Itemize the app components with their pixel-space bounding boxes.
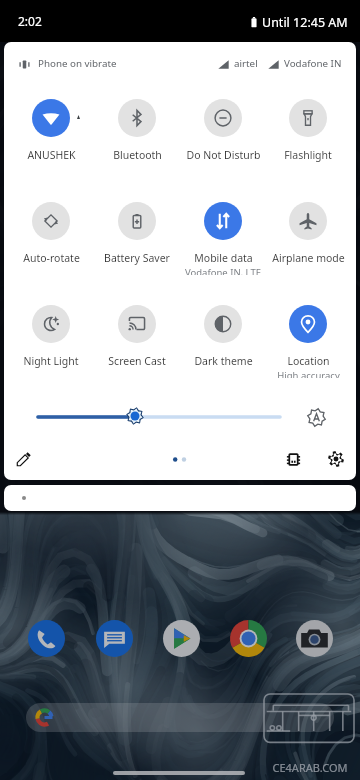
button[interactable]: Search xyxy=(26,703,334,732)
staticText: Dark theme xyxy=(194,354,253,368)
button[interactable]: Brightness xyxy=(126,407,144,425)
button[interactable]: Airplane mode xyxy=(265,198,351,274)
button[interactable]: Battery Saver xyxy=(94,198,180,274)
staticText: Auto-rotate xyxy=(23,251,80,265)
button[interactable]: Messages xyxy=(94,618,134,658)
staticText: Battery Saver xyxy=(104,251,170,265)
staticText: Vodafone IN, LTE xyxy=(185,266,261,275)
staticText: High accuracy xyxy=(277,369,340,378)
button[interactable]: Phone xyxy=(26,618,66,658)
staticText: Do Not Disturb xyxy=(186,148,261,162)
staticText: CE4ARAB.COM xyxy=(262,760,358,775)
staticText: ANUSHEK xyxy=(27,148,76,162)
button[interactable]: Chrome xyxy=(228,618,268,658)
button[interactable]: Play Store xyxy=(161,618,201,658)
staticText: Phone on vibrate xyxy=(38,57,117,70)
button[interactable]: Edit xyxy=(12,447,36,471)
button[interactable]: Flashlight xyxy=(265,95,351,171)
button[interactable]: Screen Cast xyxy=(94,301,180,377)
button[interactable]: Auto-rotate xyxy=(8,198,94,274)
staticText: Screen Cast xyxy=(108,354,166,368)
button[interactable]: ANUSHEK xyxy=(8,95,94,171)
button[interactable]: Location xyxy=(265,301,351,377)
staticText: Flashlight xyxy=(284,148,332,162)
staticText: airtel xyxy=(234,57,258,70)
button[interactable]: Camera xyxy=(294,618,334,658)
button[interactable]: Auto brightness xyxy=(305,406,327,428)
staticText: Night Light xyxy=(23,354,79,368)
staticText: Until 12:45 AM xyxy=(262,14,348,31)
staticText: Airplane mode xyxy=(272,251,345,265)
button[interactable]: Dark theme xyxy=(180,301,266,377)
button[interactable]: Settings xyxy=(324,447,348,471)
button[interactable]: Mobile data xyxy=(180,198,266,274)
staticText: 2:02 xyxy=(18,13,42,29)
staticText: Vodafone IN xyxy=(284,57,342,70)
staticText: Location xyxy=(287,354,330,368)
button[interactable]: Do Not Disturb xyxy=(180,95,266,171)
button[interactable]: Night Light xyxy=(8,301,94,377)
button[interactable]: Bluetooth xyxy=(94,95,180,171)
staticText: Mobile data xyxy=(194,251,253,265)
staticText: Bluetooth xyxy=(113,148,162,162)
button[interactable]: Device info xyxy=(281,447,305,471)
